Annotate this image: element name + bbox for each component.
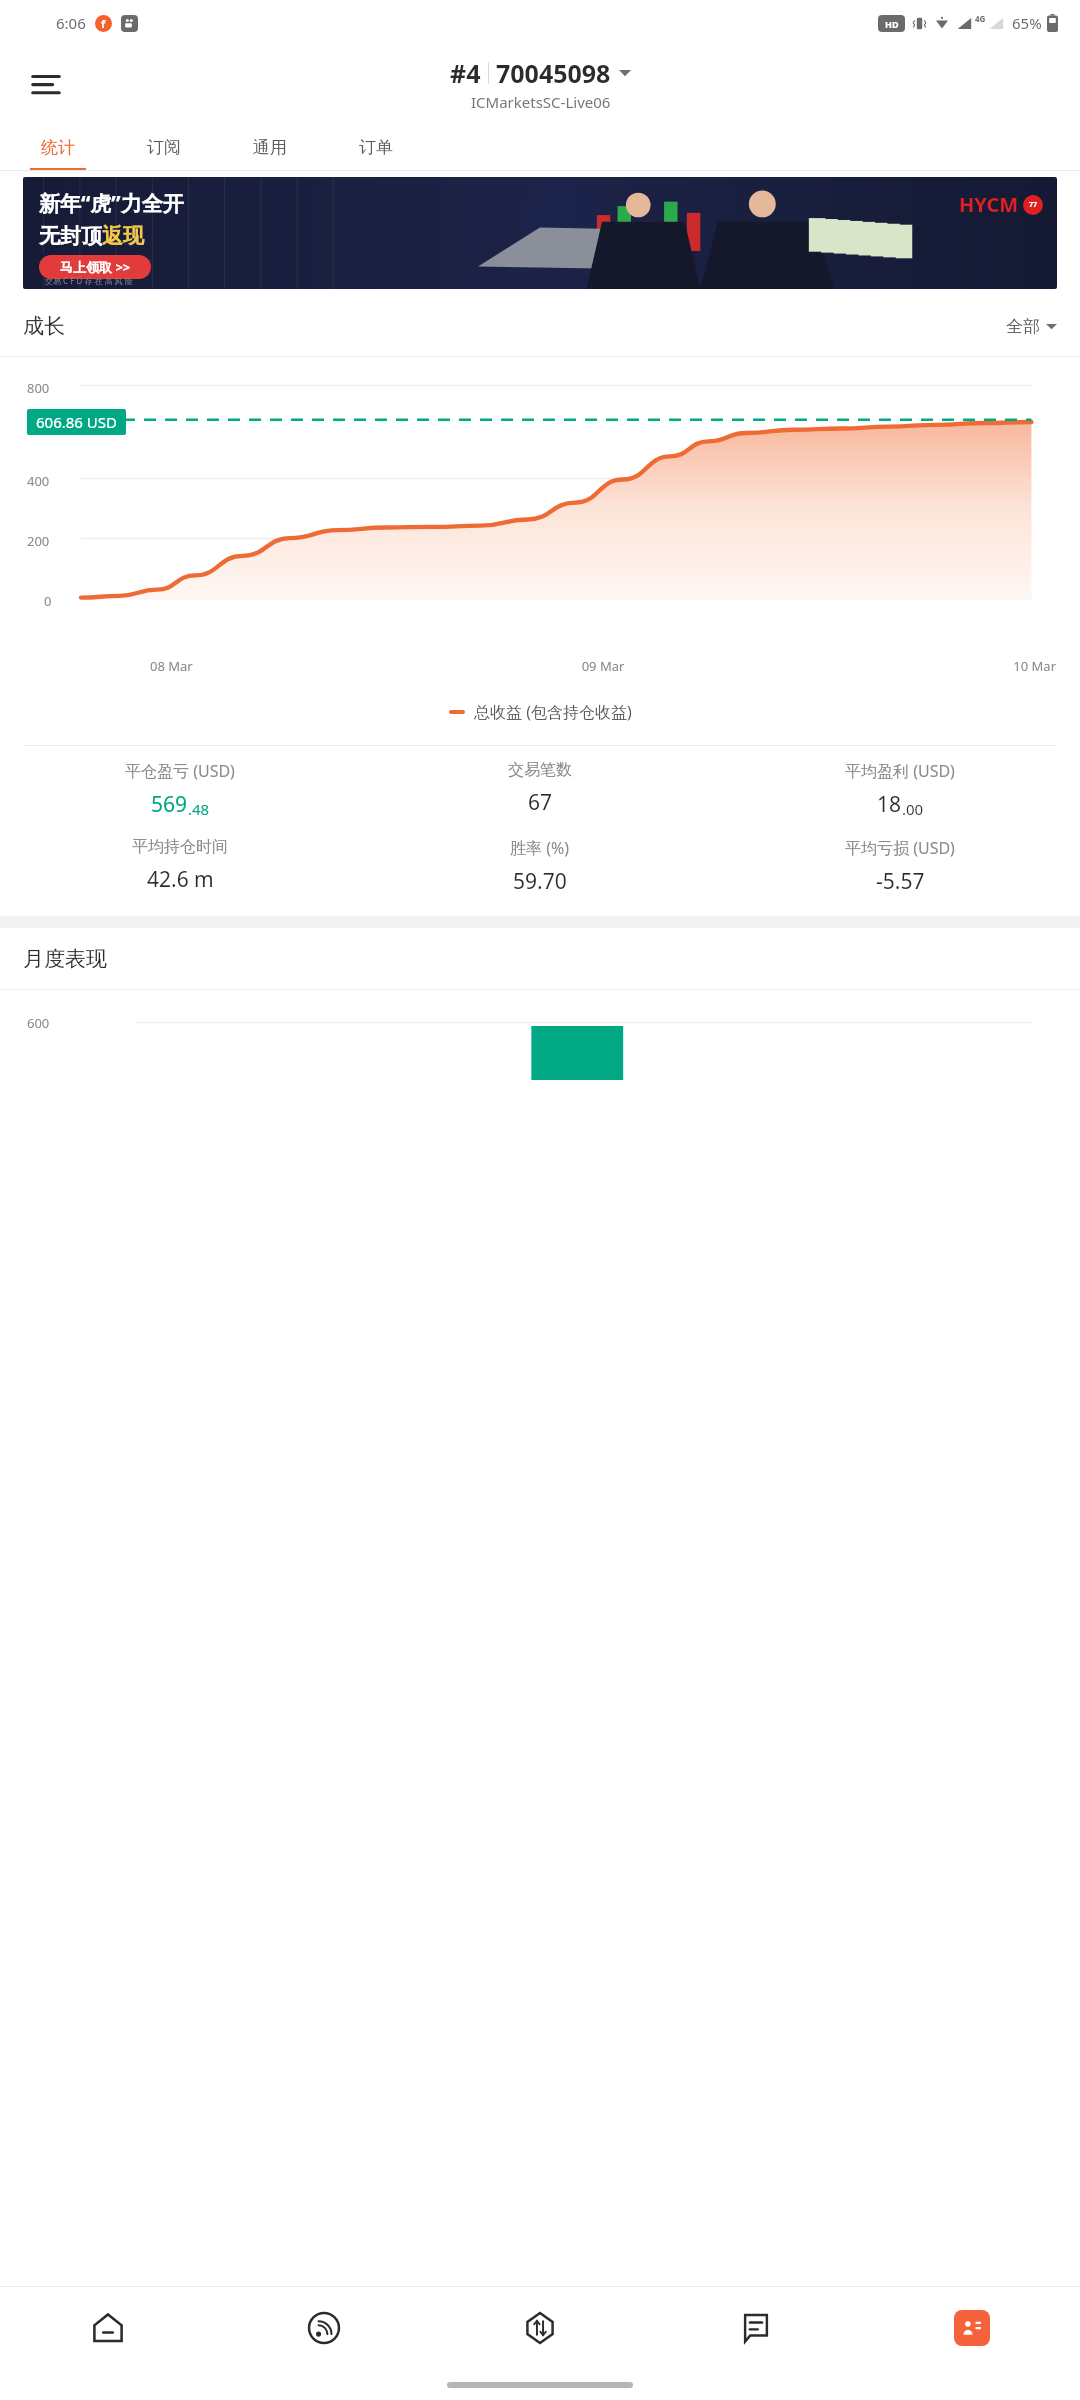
staticText: 全部 bbox=[1006, 316, 1040, 337]
button[interactable]: 全部 bbox=[1006, 316, 1057, 337]
staticText: 800 bbox=[27, 379, 50, 397]
staticText: 400 bbox=[27, 472, 50, 490]
staticText: 0 bbox=[44, 592, 52, 610]
button[interactable]: 平仓盈亏 (USD) bbox=[0, 760, 360, 819]
staticText: .00 bbox=[902, 799, 924, 819]
staticText: 600 bbox=[27, 1014, 50, 1032]
staticText: HYCM bbox=[959, 191, 1019, 218]
staticText: 67 bbox=[528, 788, 553, 817]
staticText: 平仓盈亏 (USD) bbox=[125, 760, 235, 782]
button[interactable]: 通用 bbox=[234, 123, 306, 171]
button[interactable]: Home bbox=[0, 2286, 216, 2370]
staticText: 09 Mar bbox=[452, 657, 754, 675]
staticText: HD bbox=[885, 18, 899, 30]
staticText: 胜率 (%) bbox=[510, 837, 570, 859]
staticText: 77 bbox=[1029, 200, 1038, 210]
staticText: 569 bbox=[151, 790, 188, 819]
button[interactable]: 交易笔数 bbox=[360, 760, 720, 817]
staticText: 交易笔数 bbox=[508, 760, 572, 780]
staticText: 无封顶 bbox=[39, 223, 102, 249]
button[interactable]: 订阅 bbox=[128, 123, 200, 171]
staticText: 42.6 m bbox=[147, 865, 214, 894]
staticText: 平均亏损 (USD) bbox=[845, 837, 955, 859]
staticText: 6:06 bbox=[56, 13, 86, 33]
staticText: #4 bbox=[450, 56, 481, 90]
staticText: 200 bbox=[27, 532, 50, 550]
staticText: 平均盈利 (USD) bbox=[845, 760, 955, 782]
staticText: 订阅 bbox=[147, 137, 181, 158]
staticText: 08 Mar bbox=[150, 657, 452, 675]
button[interactable]: 平均盈利 (USD) bbox=[720, 760, 1080, 819]
staticText: 10 Mar bbox=[754, 657, 1056, 675]
staticText: 月度表现 bbox=[23, 946, 107, 972]
staticText: 成长 bbox=[23, 313, 65, 339]
button[interactable]: 平均持仓时间 bbox=[0, 837, 360, 894]
button[interactable]: 订单 bbox=[340, 123, 412, 171]
staticText: 65% bbox=[1012, 13, 1042, 33]
button[interactable]: Profile bbox=[864, 2286, 1080, 2370]
staticText: 统计 bbox=[41, 137, 75, 158]
staticText: 4G bbox=[975, 13, 986, 24]
staticText: .48 bbox=[188, 799, 210, 819]
staticText: 马上领取 >> bbox=[60, 258, 131, 276]
button[interactable]: Menu bbox=[18, 56, 74, 112]
staticText: 返现 bbox=[102, 223, 144, 249]
button[interactable]: Trade bbox=[432, 2286, 648, 2370]
staticText: -5.57 bbox=[876, 867, 925, 896]
button[interactable]: 统计 bbox=[22, 123, 94, 171]
button[interactable]: Messages bbox=[648, 2286, 864, 2370]
staticText: 606.86 USD bbox=[36, 412, 117, 432]
staticText: 59.70 bbox=[513, 867, 567, 896]
staticText: 平均持仓时间 bbox=[132, 837, 228, 857]
staticText: 交易 C F D 存 在 高 风 险 bbox=[45, 275, 133, 286]
button[interactable]: 胜率 (%) bbox=[360, 837, 720, 896]
button[interactable]: 平均亏损 (USD) bbox=[720, 837, 1080, 896]
staticText: 18 bbox=[877, 790, 902, 819]
button[interactable]: #4 bbox=[450, 56, 631, 112]
staticText: 通用 bbox=[253, 137, 287, 158]
staticText: 新年“虎”力全开 bbox=[39, 189, 184, 218]
button[interactable]: 新年“虎”力全开 bbox=[23, 177, 1057, 289]
staticText: 70045098 bbox=[496, 56, 611, 90]
staticText: ICMarketsSC-Live06 bbox=[471, 92, 611, 112]
staticText: 订单 bbox=[359, 137, 393, 158]
staticText: f bbox=[101, 16, 106, 31]
button[interactable]: Signals bbox=[216, 2286, 432, 2370]
staticText: 总收益 (包含持仓收益) bbox=[474, 701, 632, 723]
